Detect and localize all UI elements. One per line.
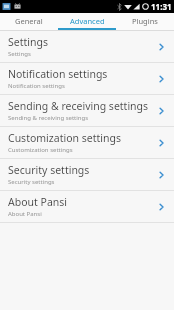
staticText: About Pansi xyxy=(8,195,67,209)
staticText: Sending & receiving settings xyxy=(8,114,89,122)
button[interactable]: Plugins xyxy=(116,13,174,28)
staticText: Notification settings xyxy=(8,82,65,90)
staticText: Settings xyxy=(8,35,48,49)
staticText: Customization settings xyxy=(8,131,121,145)
button[interactable]: Notification settings xyxy=(0,63,174,94)
button[interactable]: Sending & receiving settings xyxy=(0,95,174,126)
other: Open Sending & receiving settings xyxy=(156,104,166,118)
button[interactable]: Security settings xyxy=(0,159,174,190)
button[interactable]: General xyxy=(0,13,58,28)
button[interactable]: About Pansi xyxy=(0,191,174,222)
staticText: Settings xyxy=(8,50,31,58)
staticText: Plugins xyxy=(132,16,158,26)
staticText: General xyxy=(15,16,43,26)
other: Open Security settings xyxy=(156,168,166,182)
button[interactable]: Settings xyxy=(0,31,174,62)
staticText: About Pansi xyxy=(8,210,42,218)
staticText: Notification settings xyxy=(8,67,108,81)
button[interactable]: Customization settings xyxy=(0,127,174,158)
staticText: Customization settings xyxy=(8,146,73,154)
other: Open Customization settings xyxy=(156,136,166,150)
other: Open Settings xyxy=(156,40,166,54)
staticText: Sending & receiving settings xyxy=(8,99,149,113)
staticText: Security settings xyxy=(8,163,90,177)
staticText: Security settings xyxy=(8,178,55,186)
staticText: Advanced xyxy=(70,16,105,26)
other: Open About Pansi xyxy=(156,200,166,214)
staticText: 11:31 xyxy=(151,1,172,12)
other: Open Notification settings xyxy=(156,72,166,86)
button[interactable]: Advanced xyxy=(58,13,116,28)
